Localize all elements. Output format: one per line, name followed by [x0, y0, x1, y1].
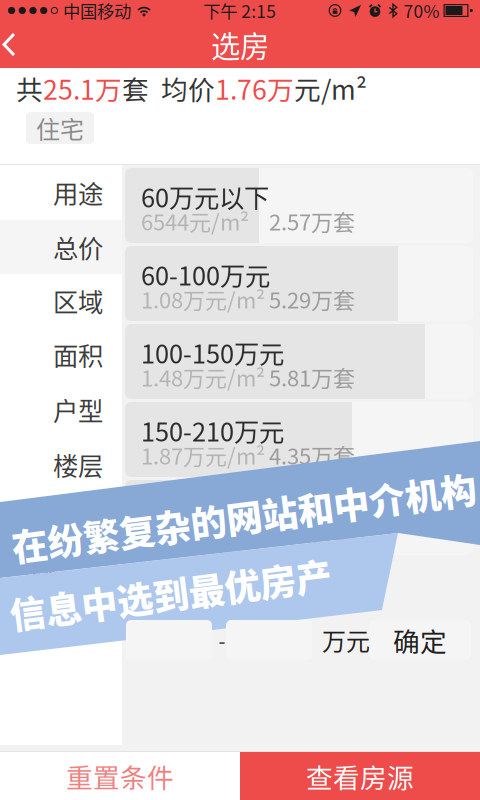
staticText: 套: [122, 69, 149, 107]
staticText: 元/m²: [294, 69, 367, 107]
button[interactable]: 60-100万元: [125, 246, 473, 321]
staticText: 信息中选到最优房产: [8, 558, 332, 610]
staticText: 6544元/m²: [141, 205, 249, 237]
staticText: 1.76万: [215, 69, 294, 107]
button[interactable]: 最低价: [126, 620, 212, 660]
button[interactable]: 总价: [0, 220, 122, 274]
staticText: 2.57万套: [269, 205, 355, 237]
staticText: 总价: [53, 229, 103, 265]
staticText: 住宅: [36, 111, 84, 145]
staticText: 25.1万: [43, 69, 122, 107]
staticText: 2.18万套: [269, 517, 355, 549]
staticText: 5.29万套: [269, 283, 355, 315]
staticText: 用途: [53, 174, 103, 211]
staticText: 万元: [322, 623, 370, 657]
button[interactable]: 房屋结构: [0, 492, 122, 602]
button[interactable]: 重置条件: [0, 752, 240, 800]
button[interactable]: 面积: [0, 327, 122, 382]
staticText: 共: [16, 69, 43, 107]
button[interactable]: 用途: [0, 165, 122, 220]
staticText: 在纷繁复杂的网站和中介机构: [10, 490, 478, 542]
staticText: 楼层: [53, 446, 103, 483]
staticText: 下午 2:15: [203, 0, 276, 23]
button[interactable]: 210-300万元: [125, 480, 473, 555]
button[interactable]: 查看房源: [240, 752, 480, 800]
button[interactable]: 确定: [369, 620, 471, 660]
staticText: -: [218, 625, 225, 654]
staticText: 区域: [53, 282, 103, 319]
staticText: 1.08万元/m²: [141, 283, 265, 315]
staticText: 选房: [211, 23, 269, 66]
button[interactable]: 150-210万元: [125, 402, 473, 477]
staticText: 面积: [53, 336, 103, 373]
staticText: 100-150万元: [141, 334, 284, 371]
button[interactable]: 户型: [0, 382, 122, 437]
staticText: 210-300万元: [141, 490, 284, 527]
staticText: 1.87万元/m²: [141, 439, 265, 471]
staticText: 1.48万元/m²: [141, 361, 265, 393]
staticText: 4.35万套: [269, 439, 355, 471]
button[interactable]: 区域: [0, 274, 122, 327]
button[interactable]: 返回: [0, 26, 45, 63]
staticText: 150-210万元: [141, 412, 284, 449]
staticText: 60-100万元: [141, 256, 270, 293]
staticText: 确定: [393, 621, 447, 659]
staticText: 均价: [149, 69, 215, 107]
staticText: 重置条件: [66, 757, 174, 795]
staticText: 房屋结构: [28, 510, 103, 584]
staticText: 户型: [53, 391, 103, 428]
button[interactable]: 60万元以下: [125, 168, 473, 243]
staticText: 中国移动: [63, 0, 131, 23]
staticText: 60万元以下: [141, 178, 269, 215]
staticText: 查看房源: [306, 757, 414, 795]
staticText: 70%: [403, 0, 439, 23]
staticText: 5.81万套: [269, 361, 355, 393]
button[interactable]: 100-150万元: [125, 324, 473, 399]
button[interactable]: 楼层: [0, 437, 122, 492]
staticText: 2.41万元/m²: [141, 517, 265, 549]
button[interactable]: 住宅: [26, 112, 94, 144]
